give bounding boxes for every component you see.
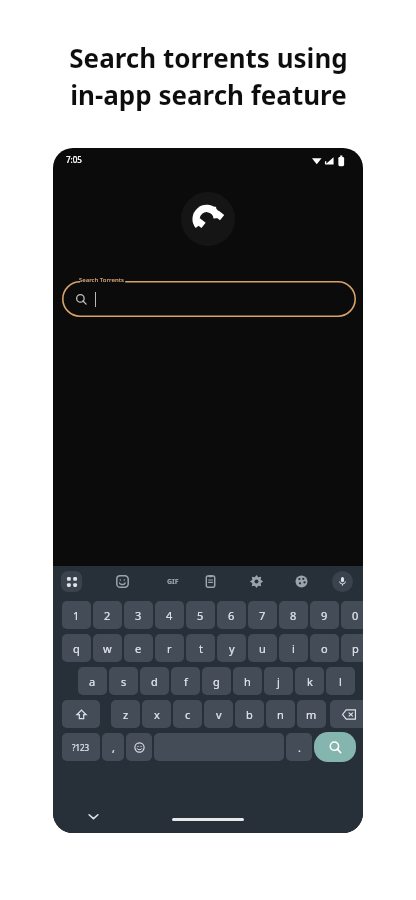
button[interactable]: Shift xyxy=(62,700,100,728)
staticText: u xyxy=(259,641,266,656)
staticText: 0 xyxy=(352,608,359,623)
button[interactable]: Clipboard xyxy=(203,574,218,589)
staticText: a xyxy=(89,674,96,689)
staticText: s xyxy=(121,674,127,689)
staticText: w xyxy=(103,641,112,656)
button[interactable]: Search Torrents xyxy=(62,281,356,317)
button[interactable]: z xyxy=(111,700,140,728)
staticText: e xyxy=(135,641,142,656)
button[interactable]: 3 xyxy=(124,601,153,629)
button[interactable]: l xyxy=(326,667,355,695)
button[interactable]: y xyxy=(217,634,246,662)
button[interactable]: x xyxy=(142,700,171,728)
staticText: i xyxy=(292,641,295,656)
button[interactable]: GIF xyxy=(161,576,185,587)
button[interactable]: 0 xyxy=(341,601,363,629)
staticText: 4 xyxy=(166,608,173,623)
button[interactable]: i xyxy=(279,634,308,662)
staticText: Search Torrents xyxy=(79,276,124,284)
staticText: r xyxy=(167,641,172,656)
button[interactable]: p xyxy=(341,634,363,662)
button[interactable]: m xyxy=(297,700,326,728)
staticText: m xyxy=(306,707,317,722)
staticText: h xyxy=(244,674,251,689)
staticText: 8 xyxy=(290,608,297,623)
button[interactable]: g xyxy=(202,667,231,695)
button[interactable]: 1 xyxy=(62,601,91,629)
button[interactable]: Voice input xyxy=(332,571,353,592)
staticText: n xyxy=(277,707,284,722)
button[interactable]: d xyxy=(140,667,169,695)
button[interactable]: q xyxy=(62,634,91,662)
button[interactable]: , xyxy=(102,733,124,761)
button[interactable]: s xyxy=(109,667,138,695)
staticText: k xyxy=(307,674,313,689)
button[interactable]: Search xyxy=(314,732,356,762)
button[interactable]: v xyxy=(204,700,233,728)
staticText: p xyxy=(352,641,359,656)
staticText: t xyxy=(199,641,203,656)
button[interactable]: 7 xyxy=(248,601,277,629)
button[interactable]: a xyxy=(78,667,107,695)
button[interactable]: h xyxy=(233,667,262,695)
button[interactable]: u xyxy=(248,634,277,662)
button[interactable]: Keyboard modes xyxy=(61,571,82,592)
button[interactable]: n xyxy=(266,700,295,728)
staticText: GIF xyxy=(167,577,179,587)
staticText: 2 xyxy=(104,608,111,623)
button[interactable]: Themes xyxy=(294,574,309,589)
button[interactable]: 9 xyxy=(310,601,339,629)
staticText: y xyxy=(229,641,235,656)
staticText: 1 xyxy=(73,608,80,623)
button[interactable]: Backspace xyxy=(330,700,363,728)
staticText: x xyxy=(154,707,160,722)
staticText: 3 xyxy=(135,608,142,623)
button[interactable]: Settings xyxy=(249,574,264,589)
button[interactable]: Hide keyboard xyxy=(84,807,102,825)
button[interactable]: r xyxy=(155,634,184,662)
staticText: d xyxy=(151,674,158,689)
button[interactable]: k xyxy=(295,667,324,695)
button[interactable]: . xyxy=(286,733,312,761)
staticText: , xyxy=(112,740,115,755)
staticText: c xyxy=(185,707,191,722)
staticText: 6 xyxy=(228,608,235,623)
other: App logo xyxy=(191,202,225,236)
staticText: j xyxy=(277,674,280,689)
staticText: g xyxy=(213,674,220,689)
button[interactable]: 5 xyxy=(186,601,215,629)
staticText: in-app search feature xyxy=(70,77,347,112)
button[interactable]: b xyxy=(235,700,264,728)
staticText: 7 xyxy=(259,608,266,623)
button[interactable]: f xyxy=(171,667,200,695)
staticText: v xyxy=(216,707,222,722)
button[interactable]: e xyxy=(124,634,153,662)
button[interactable]: 2 xyxy=(93,601,122,629)
button[interactable]: o xyxy=(310,634,339,662)
staticText: ?123 xyxy=(72,742,90,753)
button[interactable]: 8 xyxy=(279,601,308,629)
button[interactable]: w xyxy=(93,634,122,662)
button[interactable]: t xyxy=(186,634,215,662)
button[interactable]: Emoji xyxy=(126,733,152,761)
staticText: o xyxy=(321,641,328,656)
button[interactable]: c xyxy=(173,700,202,728)
button[interactable]: 4 xyxy=(155,601,184,629)
button[interactable]: j xyxy=(264,667,293,695)
staticText: 9 xyxy=(321,608,328,623)
staticText: 5 xyxy=(197,608,204,623)
staticText: q xyxy=(73,641,80,656)
staticText: . xyxy=(298,740,301,755)
staticText: l xyxy=(339,674,342,689)
staticText: b xyxy=(246,707,253,722)
button[interactable]: Stickers xyxy=(115,574,130,589)
button[interactable]: 6 xyxy=(217,601,246,629)
staticText: z xyxy=(123,707,129,722)
staticText: Search torrents using xyxy=(69,40,348,75)
button[interactable]: ?123 xyxy=(62,733,100,761)
staticText: 7:05 xyxy=(66,154,82,165)
staticText: f xyxy=(184,674,188,689)
